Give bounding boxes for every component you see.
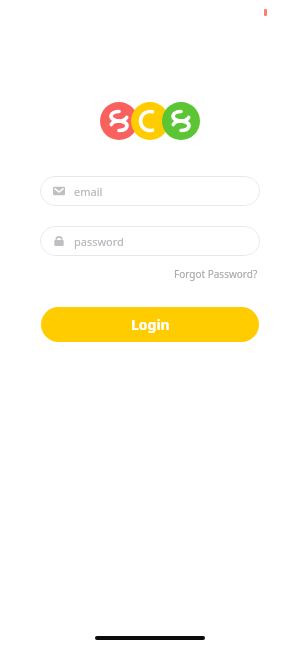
button[interactable]: Forgot Password? xyxy=(172,265,260,283)
staticText: Login xyxy=(131,315,170,334)
staticText: Forgot Password? xyxy=(174,267,258,281)
staticText: email xyxy=(74,184,103,199)
button[interactable]: email xyxy=(40,176,260,206)
staticText: password xyxy=(74,234,124,249)
button[interactable]: Login xyxy=(41,307,259,342)
button[interactable]: password xyxy=(40,226,260,256)
